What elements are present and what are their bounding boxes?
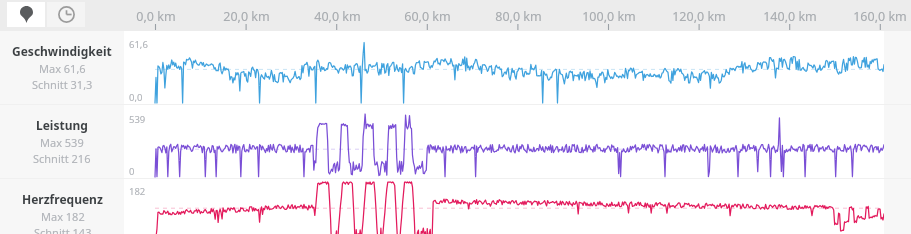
staticText: Max 539 [40, 135, 84, 150]
staticText: 80,0 km [495, 8, 542, 25]
staticText: 182 [129, 185, 146, 198]
button[interactable]: Show map [7, 2, 45, 27]
staticText: 60,0 km [404, 8, 451, 25]
staticText: 160,0 km [853, 8, 907, 25]
staticText: 0 [129, 165, 135, 178]
staticText: Max 182 [41, 209, 85, 224]
staticText: 140,0 km [763, 8, 817, 25]
staticText: 61,6 [129, 38, 148, 51]
button[interactable]: Show time axis [47, 2, 85, 27]
button[interactable]: Geschwindigkeit [0, 31, 124, 104]
staticText: 0,0 [129, 91, 143, 104]
staticText: 0,0 km [136, 8, 176, 25]
staticText: Schnitt 216 [33, 151, 91, 166]
staticText: Herzfrequenz [22, 191, 103, 207]
button[interactable]: Herzfrequenz [0, 179, 124, 234]
staticText: 40,0 km [314, 8, 361, 25]
staticText: Schnitt 31,3 [32, 77, 93, 92]
staticText: 539 [129, 113, 146, 126]
staticText: 100,0 km [582, 8, 636, 25]
staticText: 120,0 km [672, 8, 726, 25]
staticText: Max 61,6 [39, 61, 86, 76]
staticText: 20,0 km [223, 8, 270, 25]
staticText: Leistung [36, 117, 88, 133]
button[interactable]: Leistung [0, 105, 124, 178]
staticText: Schnitt 143 [34, 225, 92, 234]
staticText: Geschwindigkeit [12, 43, 112, 59]
